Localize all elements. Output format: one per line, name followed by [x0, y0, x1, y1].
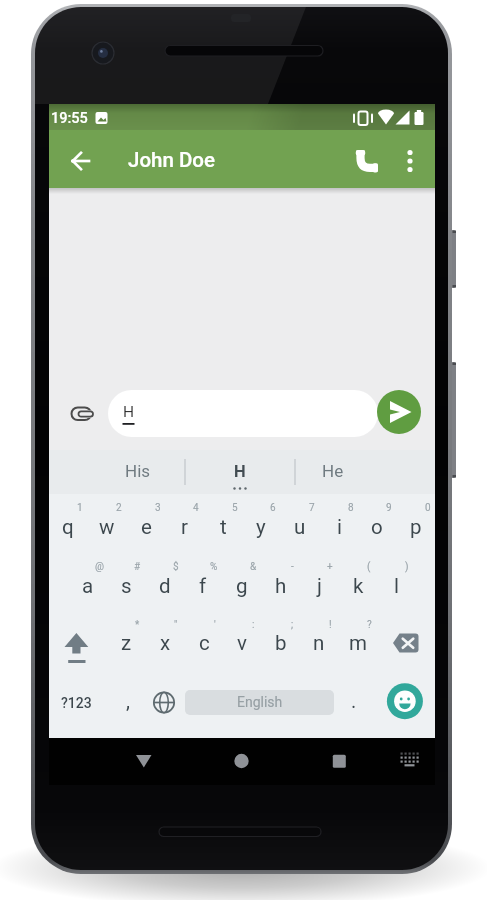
button[interactable]	[146, 681, 182, 723]
staticText: u	[294, 515, 306, 539]
button[interactable]: d	[146, 568, 184, 604]
button[interactable]: s	[107, 568, 145, 604]
staticText: .	[351, 689, 357, 712]
button[interactable]	[61, 395, 97, 431]
button[interactable]	[347, 143, 383, 179]
button[interactable]: ?123	[49, 683, 103, 723]
staticText: +	[327, 561, 333, 573]
staticText: John Doe	[128, 148, 216, 172]
staticText: 2	[116, 502, 122, 514]
staticText: r	[181, 515, 188, 539]
button[interactable]: v	[223, 625, 261, 661]
button[interactable]: j	[300, 568, 338, 604]
staticText: ,	[126, 689, 130, 712]
button[interactable]: m	[339, 625, 377, 661]
button[interactable]: p	[397, 509, 435, 545]
button[interactable]: He	[273, 451, 393, 491]
button[interactable]: H	[188, 451, 292, 491]
staticText: k	[353, 574, 364, 598]
button[interactable]	[386, 684, 422, 720]
button[interactable]	[392, 744, 428, 780]
staticText: H	[234, 462, 246, 481]
button[interactable]	[55, 620, 101, 666]
button[interactable]	[120, 740, 168, 784]
button[interactable]	[377, 390, 421, 434]
staticText: a	[82, 574, 94, 598]
staticText: s	[121, 574, 132, 598]
staticText: t	[220, 515, 227, 539]
button[interactable]: n	[300, 625, 338, 661]
button[interactable]: e	[127, 509, 165, 545]
staticText: 4	[193, 502, 199, 514]
staticText: m	[349, 631, 367, 655]
staticText: d	[159, 574, 171, 598]
staticText: 5	[232, 502, 238, 514]
staticText: #	[134, 561, 141, 573]
staticText: He	[322, 461, 344, 481]
button[interactable]	[108, 390, 378, 437]
staticText: 9	[386, 502, 392, 514]
staticText: His	[125, 461, 151, 481]
button[interactable]: x	[146, 625, 184, 661]
button[interactable]: a	[69, 568, 107, 604]
button[interactable]	[218, 740, 266, 784]
button[interactable]: f	[184, 568, 222, 604]
staticText: p	[410, 515, 422, 539]
button[interactable]: u	[281, 509, 319, 545]
staticText: l	[394, 574, 399, 598]
staticText: ?	[367, 619, 372, 631]
staticText: e	[141, 515, 152, 539]
staticText: 8	[348, 502, 354, 514]
button[interactable]: h	[262, 568, 300, 604]
button[interactable]: ,	[113, 680, 143, 720]
button[interactable]: His	[78, 451, 198, 491]
button[interactable]: o	[358, 509, 396, 545]
staticText: H	[123, 403, 135, 421]
staticText: @	[95, 561, 104, 573]
button[interactable]: g	[223, 568, 261, 604]
staticText: z	[121, 631, 132, 655]
button[interactable]	[62, 143, 98, 179]
button[interactable]: q	[49, 509, 87, 545]
staticText: w	[99, 515, 115, 539]
staticText: 0	[425, 502, 431, 514]
button[interactable]: t	[204, 509, 242, 545]
staticText: j	[317, 574, 322, 598]
staticText: %	[210, 561, 218, 573]
staticText: x	[160, 631, 171, 655]
button[interactable]: l	[377, 568, 415, 604]
staticText: i	[337, 515, 342, 539]
button[interactable]	[315, 740, 363, 784]
staticText: '	[214, 619, 216, 631]
button[interactable]: z	[107, 625, 145, 661]
staticText: *	[135, 619, 140, 631]
staticText: -	[291, 561, 294, 573]
staticText: 7	[309, 502, 315, 514]
staticText: :	[252, 619, 255, 631]
button[interactable]	[185, 690, 334, 715]
staticText: g	[236, 574, 248, 598]
button[interactable]: r	[165, 509, 203, 545]
staticText: h	[275, 574, 287, 598]
button[interactable]: .	[339, 680, 369, 720]
button[interactable]: k	[339, 568, 377, 604]
staticText: &	[250, 561, 257, 573]
button[interactable]	[383, 620, 429, 666]
staticText: c	[199, 631, 210, 655]
button[interactable]: b	[262, 625, 300, 661]
staticText: ?123	[61, 695, 92, 711]
staticText: 1	[77, 502, 83, 514]
button[interactable]: c	[185, 625, 223, 661]
button[interactable]: y	[242, 509, 280, 545]
button[interactable]: i	[320, 509, 358, 545]
staticText: (	[367, 561, 371, 573]
staticText: v	[237, 631, 247, 655]
staticText: !	[329, 619, 332, 631]
staticText: 6	[270, 502, 276, 514]
staticText: q	[62, 515, 74, 539]
staticText: f	[199, 574, 207, 598]
staticText: y	[256, 515, 266, 539]
staticText: )	[405, 561, 409, 573]
button[interactable]	[393, 143, 429, 179]
button[interactable]: w	[88, 509, 126, 545]
